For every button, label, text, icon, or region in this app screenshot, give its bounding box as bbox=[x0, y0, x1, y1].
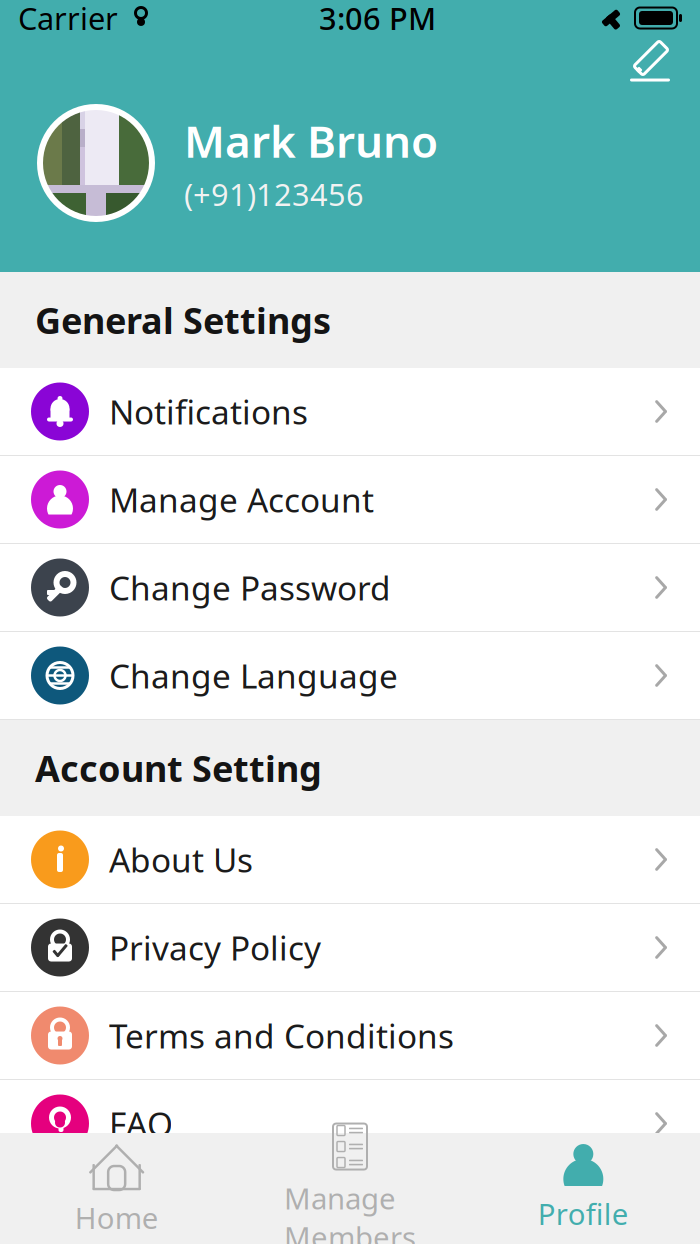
staticText: Privacy Policy bbox=[109, 925, 321, 970]
staticText: Profile bbox=[538, 1194, 629, 1233]
button[interactable]: Change Password bbox=[0, 544, 700, 632]
staticText: General Settings bbox=[35, 296, 331, 344]
staticText: (+91)123456 bbox=[184, 174, 364, 215]
button[interactable]: Home bbox=[0, 1133, 233, 1244]
button[interactable]: Profile bbox=[467, 1133, 700, 1244]
staticText: About Us bbox=[109, 837, 253, 882]
button[interactable]: Manage Account bbox=[0, 456, 700, 544]
staticText: Manage Members bbox=[284, 1178, 416, 1244]
staticText: Notifications bbox=[109, 389, 308, 434]
staticText: Carrier bbox=[18, 0, 118, 38]
staticText: Mark Bruno bbox=[184, 111, 438, 170]
staticText: Account Setting bbox=[35, 744, 322, 792]
staticText: 3:06 PM bbox=[319, 0, 436, 38]
button[interactable]: Manage Members bbox=[233, 1133, 467, 1244]
button[interactable]: Edit profile bbox=[626, 38, 700, 86]
button[interactable]: About Us bbox=[0, 816, 700, 904]
staticText: Home bbox=[75, 1198, 159, 1237]
staticText: Manage Account bbox=[109, 477, 374, 522]
staticText: FAQ bbox=[109, 1101, 173, 1146]
button[interactable]: Terms and Conditions bbox=[0, 992, 700, 1080]
staticText: Terms and Conditions bbox=[109, 1013, 454, 1058]
button[interactable]: Notifications bbox=[0, 368, 700, 456]
button[interactable]: Change Language bbox=[0, 632, 700, 720]
staticText: Change Password bbox=[109, 565, 391, 610]
button[interactable]: FAQ bbox=[0, 1080, 700, 1168]
button[interactable]: Privacy Policy bbox=[0, 904, 700, 992]
staticText: Change Language bbox=[109, 653, 398, 698]
